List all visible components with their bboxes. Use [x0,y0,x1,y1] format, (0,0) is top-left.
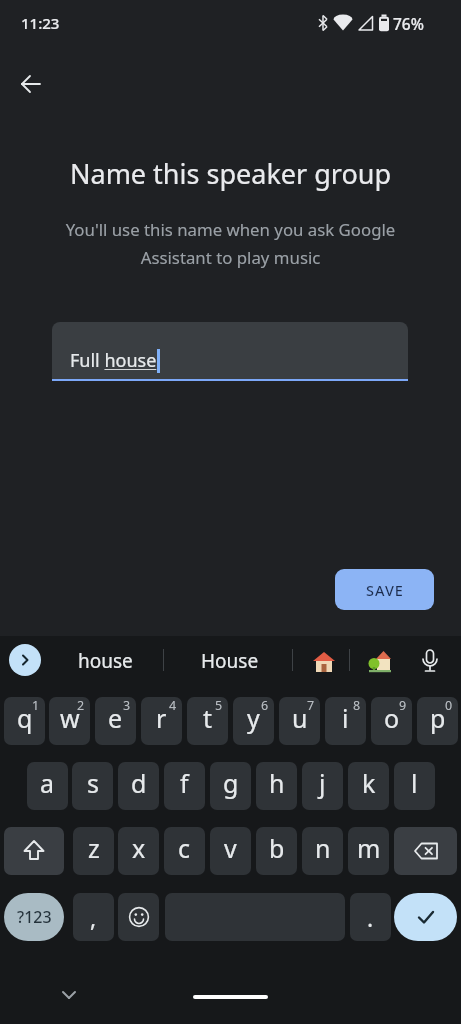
button[interactable]: m [348,827,389,875]
button[interactable] [4,827,64,875]
button[interactable]: house [55,644,155,678]
button[interactable]: c [164,827,205,875]
button[interactable]: s [72,762,113,810]
staticText: ?123 [17,906,52,928]
button[interactable]: p [417,697,458,745]
button[interactable]: w [49,697,90,745]
button[interactable]: ?123 [4,893,64,941]
button[interactable]: SAVE [335,569,434,610]
button[interactable]: a [27,762,68,810]
staticText: b [269,831,285,865]
staticText: k [362,766,376,800]
button[interactable] [368,650,392,674]
button[interactable]: x [118,827,159,875]
button[interactable]: e [95,697,136,745]
staticText: o [384,701,400,735]
staticText: 0 [445,697,453,714]
staticText: 8 [353,697,361,714]
button[interactable]: z [73,827,114,875]
staticText: 9 [399,697,407,714]
staticText: q [17,701,33,735]
staticText: r [156,701,167,735]
staticText: SAVE [366,580,404,600]
staticText: house [78,648,133,674]
button[interactable]: r [141,697,182,745]
button[interactable]: l [394,762,435,810]
staticText: j [319,766,326,800]
button[interactable]: j [302,762,343,810]
staticText: h [269,766,285,800]
staticText: House [201,648,259,674]
staticText: 6 [261,697,269,714]
button[interactable] [312,650,336,674]
button[interactable]: i [325,697,366,745]
staticText: s [87,766,99,800]
staticText: 7 [307,697,315,714]
staticText: Name this speaker group [0,155,461,192]
staticText: 76% [393,13,424,34]
staticText: 3 [123,697,131,714]
button[interactable] [118,893,159,941]
staticText: 11:23 [21,13,60,33]
staticText: m [357,831,381,865]
staticText: . [367,902,374,933]
staticText: a [40,766,55,800]
staticText: x [132,831,146,865]
button[interactable]: y [233,697,274,745]
button[interactable] [394,893,457,941]
button[interactable]: q [4,697,45,745]
staticText: 4 [169,697,177,714]
staticText: p [430,701,446,735]
button[interactable]: v [210,827,251,875]
staticText: Full house [70,348,157,373]
staticText: f [180,766,189,800]
button[interactable]: . [350,893,391,941]
staticText: 1 [32,697,40,714]
staticText: z [88,831,100,865]
staticText: e [108,701,123,735]
button[interactable]: b [256,827,297,875]
button[interactable] [416,648,444,676]
button[interactable]: Full house [52,322,408,381]
staticText: d [131,766,147,800]
button[interactable]: f [164,762,205,810]
staticText: v [224,831,237,865]
staticText: i [342,701,349,735]
staticText: t [203,701,213,735]
staticText: 2 [77,697,85,714]
button[interactable]: o [371,697,412,745]
button[interactable]: g [210,762,251,810]
button[interactable]: k [348,762,389,810]
button[interactable] [394,827,457,875]
staticText: , [90,902,97,933]
staticText: u [292,701,308,735]
staticText: l [411,766,418,800]
button[interactable]: n [302,827,343,875]
button[interactable]: , [73,893,114,941]
button[interactable]: u [279,697,320,745]
staticText: You'll use this name when you ask Google… [0,218,461,269]
button[interactable]: h [256,762,297,810]
staticText: 5 [215,697,223,714]
button[interactable]: House [180,644,280,678]
button[interactable] [9,644,41,676]
staticText: y [247,701,260,735]
staticText: w [60,701,80,735]
button[interactable] [16,69,46,99]
staticText: g [223,766,239,800]
staticText: n [315,831,331,865]
button[interactable]: d [118,762,159,810]
staticText: c [178,831,191,865]
button[interactable]: t [187,697,228,745]
